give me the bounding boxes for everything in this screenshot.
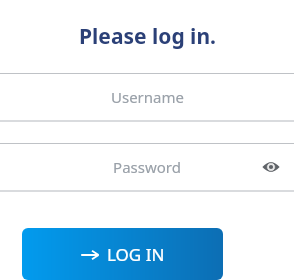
button[interactable]: LOG IN [22, 228, 223, 280]
button[interactable]: Show password [256, 152, 286, 182]
staticText: Password [113, 157, 181, 177]
staticText: Please log in. [79, 22, 216, 51]
button[interactable]: Password [0, 144, 294, 190]
staticText: Username [111, 87, 184, 107]
staticText: LOG IN [107, 243, 165, 266]
button[interactable]: Username [0, 74, 294, 120]
